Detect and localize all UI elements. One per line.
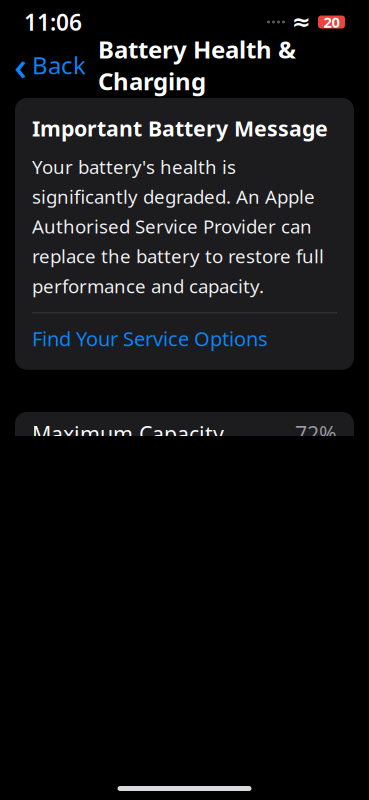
button[interactable]: ‹ [10,45,90,85]
staticText: ≈ [292,9,311,35]
button[interactable]: Find Your Service Options [32,313,337,364]
staticText: Back [32,49,86,81]
staticText: Find Your Service Options [32,325,268,352]
staticText: Battery Health & Charging [98,33,296,97]
staticText: 72% [295,420,337,448]
staticText: 11:06 [24,7,82,37]
staticText: Important Battery Message [32,114,328,142]
staticText: ‹ [14,38,27,91]
staticText: Maximum Capacity [32,420,224,448]
button[interactable]: Maximum Capacity [15,412,354,456]
staticText: Your battery's health is significantly d… [32,154,324,298]
staticText: 20 [323,12,339,32]
